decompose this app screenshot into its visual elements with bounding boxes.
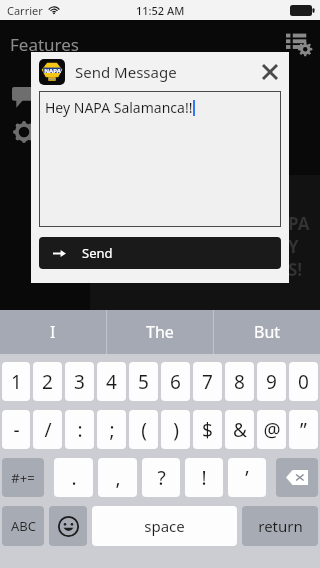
staticText: 2 — [42, 369, 53, 395]
staticText: ( — [141, 417, 147, 443]
button[interactable]: Emoji — [49, 506, 87, 546]
button[interactable]: Close — [259, 61, 281, 83]
staticText: ; — [109, 417, 115, 443]
staticText: 3 — [74, 369, 85, 395]
button[interactable]: 2 — [33, 362, 62, 401]
staticText: : — [77, 417, 83, 443]
button[interactable]: ) — [161, 410, 190, 449]
button[interactable]: ’ — [228, 458, 266, 497]
staticText: ? — [157, 465, 166, 491]
staticText: 9 — [266, 369, 277, 395]
staticText: But — [254, 321, 281, 343]
button[interactable]: Messages — [12, 85, 36, 109]
staticText: S! — [288, 258, 303, 281]
staticText: @ — [263, 417, 281, 443]
staticText: ’ — [245, 465, 249, 491]
staticText: - — [13, 417, 20, 443]
button[interactable]: $ — [193, 410, 222, 449]
staticText: PA — [288, 212, 310, 235]
staticText: ! — [201, 465, 207, 491]
button[interactable]: 4 — [97, 362, 126, 401]
button[interactable]: 6 — [161, 362, 190, 401]
button[interactable]: ! — [185, 458, 223, 497]
button[interactable]: ; — [97, 410, 126, 449]
staticText: ” — [300, 417, 307, 443]
button[interactable]: Settings list — [286, 31, 312, 57]
button[interactable]: 0 — [289, 362, 318, 401]
staticText: Features — [10, 33, 80, 56]
staticText: space — [144, 516, 185, 536]
staticText: $ — [202, 417, 213, 443]
button[interactable]: Hey NAPA Salamanca!! — [39, 91, 281, 227]
staticText: Y — [288, 235, 299, 258]
button[interactable]: Settings — [12, 120, 36, 144]
button[interactable]: 8 — [225, 362, 254, 401]
button[interactable]: . — [54, 458, 93, 497]
button[interactable]: 5 — [129, 362, 158, 401]
button[interactable]: 7 — [193, 362, 222, 401]
staticText: 5 — [138, 369, 149, 395]
button[interactable]: / — [33, 410, 62, 449]
staticText: NAPA — [44, 67, 61, 75]
button[interactable]: Send — [39, 237, 281, 269]
staticText: 7 — [202, 369, 213, 395]
staticText: The — [146, 321, 174, 343]
button[interactable]: Backspace — [276, 458, 318, 497]
staticText: return — [258, 516, 303, 536]
staticText: 8 — [234, 369, 245, 395]
button[interactable]: : — [65, 410, 94, 449]
button[interactable]: ABC — [2, 506, 44, 546]
button[interactable]: & — [225, 410, 254, 449]
staticText: Send — [82, 244, 113, 262]
button[interactable]: 9 — [257, 362, 286, 401]
staticText: 4 — [106, 369, 117, 395]
button[interactable]: - — [2, 410, 30, 449]
staticText: 1 — [11, 369, 22, 395]
button[interactable]: But — [214, 310, 320, 354]
button[interactable]: 3 — [65, 362, 94, 401]
button[interactable]: , — [98, 458, 137, 497]
staticText: Carrier — [7, 3, 43, 18]
staticText: Send Message — [75, 62, 177, 82]
staticText: #+= — [11, 469, 35, 487]
button[interactable]: return — [242, 506, 318, 546]
button[interactable]: #+= — [2, 458, 44, 497]
staticText: 0 — [298, 369, 309, 395]
button[interactable]: ” — [289, 410, 318, 449]
staticText: 6 — [170, 369, 181, 395]
staticText: . — [71, 465, 77, 491]
staticText: I — [50, 321, 56, 343]
button[interactable]: The — [107, 310, 213, 354]
staticText: 11:52 AM — [136, 3, 185, 18]
staticText: / — [44, 417, 52, 443]
button[interactable]: I — [0, 310, 106, 354]
staticText: , — [115, 465, 121, 491]
staticText: ) — [173, 417, 179, 443]
staticText: Hey NAPA Salamanca!! — [45, 98, 193, 117]
button[interactable]: ? — [142, 458, 180, 497]
button[interactable]: @ — [257, 410, 286, 449]
staticText: ABC — [11, 517, 36, 535]
button[interactable]: ( — [129, 410, 158, 449]
button[interactable]: 1 — [2, 362, 30, 401]
button[interactable]: space — [92, 506, 237, 546]
staticText: & — [233, 417, 247, 443]
